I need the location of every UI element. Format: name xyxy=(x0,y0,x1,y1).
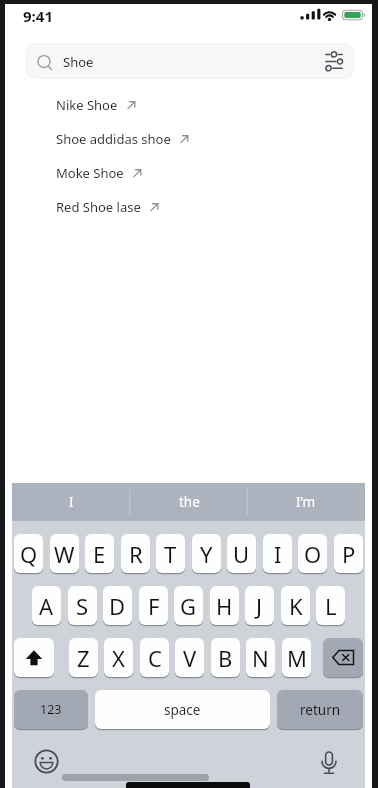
staticText: Moke Shoe xyxy=(56,164,124,182)
staticText: I’m xyxy=(296,493,316,511)
button[interactable]: L xyxy=(316,586,345,625)
staticText: S xyxy=(76,591,89,621)
button[interactable]: Moke Shoe xyxy=(56,164,142,182)
staticText: Q xyxy=(20,539,38,569)
staticText: F xyxy=(148,591,160,621)
button[interactable]: V xyxy=(175,638,204,677)
button[interactable]: Shoe xyxy=(26,43,354,79)
button[interactable]: H xyxy=(210,586,239,625)
staticText: A xyxy=(39,591,54,621)
button[interactable]: C xyxy=(140,638,169,677)
button[interactable]: B xyxy=(211,638,240,677)
button[interactable]: S xyxy=(68,586,97,625)
staticText: J xyxy=(256,591,263,621)
staticText: Z xyxy=(77,643,90,673)
button[interactable]: Z xyxy=(69,638,98,677)
staticText: G xyxy=(180,591,197,621)
button[interactable]: the xyxy=(130,483,248,521)
button[interactable]: return xyxy=(277,690,363,729)
button[interactable]: G xyxy=(174,586,203,625)
staticText: M xyxy=(287,643,307,673)
staticText: H xyxy=(216,591,233,621)
staticText: C xyxy=(148,643,162,673)
staticText: Nike Shoe xyxy=(56,96,118,114)
button[interactable]: U xyxy=(227,534,256,573)
staticText: W xyxy=(54,539,75,569)
button[interactable]: I’m xyxy=(247,483,365,521)
staticText: L xyxy=(325,591,337,621)
button[interactable] xyxy=(323,638,363,677)
button[interactable]: I xyxy=(12,483,130,521)
button[interactable]: X xyxy=(104,638,133,677)
staticText: K xyxy=(289,591,303,621)
button[interactable]: Red Shoe lase xyxy=(56,198,159,216)
button[interactable]: 123 xyxy=(14,690,88,729)
staticText: I xyxy=(69,493,74,511)
staticText: Shoe xyxy=(63,53,94,71)
button[interactable]: K xyxy=(281,586,310,625)
staticText: N xyxy=(252,643,269,673)
button[interactable]: I xyxy=(263,534,292,573)
button[interactable]: P xyxy=(334,534,363,573)
button[interactable]: Q xyxy=(14,534,43,573)
staticText: O xyxy=(304,539,322,569)
button[interactable] xyxy=(14,638,54,677)
staticText: T xyxy=(164,539,177,569)
staticText: P xyxy=(342,539,356,569)
staticText: 123 xyxy=(40,701,62,718)
staticText: space xyxy=(164,701,201,719)
staticText: B xyxy=(218,643,233,673)
staticText: 9:41 xyxy=(23,6,53,26)
staticText: return xyxy=(300,701,341,719)
button[interactable]: N xyxy=(246,638,275,677)
staticText: E xyxy=(93,539,106,569)
button[interactable]: W xyxy=(50,534,79,573)
staticText: R xyxy=(129,539,143,569)
button[interactable]: Shoe addidas shoe xyxy=(56,130,189,148)
button[interactable]: O xyxy=(298,534,327,573)
staticText: Y xyxy=(200,539,213,569)
staticText: D xyxy=(109,591,126,621)
button[interactable]: A xyxy=(32,586,61,625)
button[interactable] xyxy=(32,747,61,776)
staticText: Shoe addidas shoe xyxy=(56,130,171,148)
button[interactable]: J xyxy=(245,586,274,625)
button[interactable]: D xyxy=(103,586,132,625)
button[interactable]: Y xyxy=(192,534,221,573)
staticText: Red Shoe lase xyxy=(56,198,141,216)
staticText: V xyxy=(183,643,197,673)
button[interactable]: E xyxy=(85,534,114,573)
button[interactable]: M xyxy=(282,638,311,677)
button[interactable]: T xyxy=(156,534,185,573)
button[interactable]: F xyxy=(139,586,168,625)
button[interactable]: Nike Shoe xyxy=(56,96,136,114)
staticText: X xyxy=(112,643,125,673)
staticText: the xyxy=(179,493,200,511)
staticText: U xyxy=(233,539,250,569)
button[interactable]: R xyxy=(121,534,150,573)
staticText: I xyxy=(274,539,282,569)
button[interactable] xyxy=(315,750,343,778)
button[interactable]: space xyxy=(95,690,270,729)
